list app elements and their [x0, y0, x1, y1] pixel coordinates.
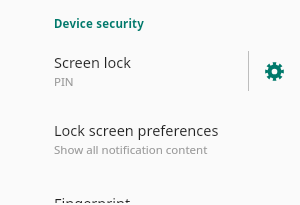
button[interactable]: Lock screen preferences — [0, 118, 300, 160]
staticText: PIN — [54, 74, 74, 90]
button[interactable]: Screen lock settings — [249, 49, 300, 93]
staticText: Show all notification content — [54, 142, 208, 158]
staticText: Screen lock — [54, 52, 131, 72]
button[interactable]: Fingerprint — [0, 191, 300, 205]
staticText: Fingerprint — [54, 193, 131, 203]
staticText: Lock screen preferences — [54, 120, 219, 140]
button[interactable]: Screen lock — [0, 52, 248, 90]
staticText: Device security — [54, 16, 145, 32]
